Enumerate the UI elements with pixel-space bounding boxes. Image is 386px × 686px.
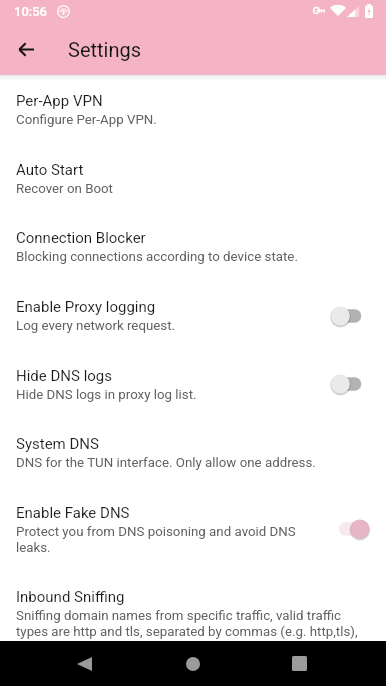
button[interactable] [331,374,370,394]
button[interactable]: Back [60,641,108,686]
staticText: Connection Blocker [16,229,146,247]
staticText: DNS for the TUN interface. Only allow on… [16,455,316,471]
button[interactable]: Per-App VPN [0,75,386,144]
staticText: Enable Proxy logging [16,298,156,316]
staticText: Hide DNS logs [16,367,113,385]
staticText: Configure Per-App VPN. [16,112,157,128]
button[interactable]: Navigate up [8,31,44,67]
staticText: Sniffing domain names from specific traf… [16,608,368,639]
staticText: Inbound Sniffing [16,588,125,606]
staticText: Auto Start [16,161,84,179]
staticText: 10:56 [14,4,47,19]
staticText: Hide DNS logs in proxy log list. [16,387,197,403]
staticText: Per-App VPN [16,92,103,110]
button[interactable]: Recents [275,641,323,686]
button[interactable]: Hide DNS logs [0,350,386,418]
staticText: Protect you from DNS poisoning and avoid… [16,524,310,555]
button[interactable]: Inbound Sniffing [0,571,386,641]
staticText: Settings [68,38,142,61]
staticText: Log every network request. [16,318,176,334]
button[interactable]: Auto Start [0,144,386,212]
button[interactable]: System DNS [0,418,386,487]
button[interactable] [331,519,370,539]
staticText: Recover on Boot [16,181,113,197]
staticText: System DNS [16,435,99,453]
button[interactable] [331,306,370,326]
button[interactable]: Connection Blocker [0,212,386,281]
staticText: Blocking connections according to device… [16,249,298,265]
button[interactable]: Home [169,641,217,686]
staticText: Enable Fake DNS [16,504,130,522]
button[interactable]: Enable Fake DNS [0,487,386,571]
button[interactable]: Enable Proxy logging [0,281,386,350]
